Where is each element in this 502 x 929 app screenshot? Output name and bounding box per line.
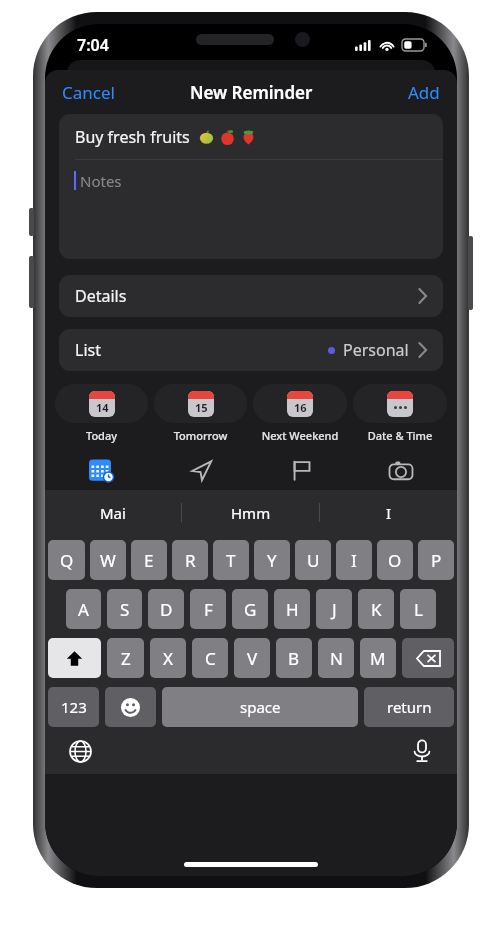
button[interactable]: V xyxy=(234,638,270,678)
staticText: W xyxy=(100,549,116,572)
button[interactable]: F xyxy=(190,589,226,629)
button[interactable]: A xyxy=(66,589,101,629)
button[interactable]: O xyxy=(377,540,413,580)
staticText: Mai xyxy=(100,503,126,523)
staticText: S xyxy=(120,598,130,621)
button[interactable]: K xyxy=(358,589,394,629)
button[interactable]: U xyxy=(295,540,331,580)
button[interactable]: Date and time xyxy=(51,450,151,490)
button[interactable]: G xyxy=(232,589,268,629)
staticText: J xyxy=(332,598,337,621)
button[interactable]: X xyxy=(150,638,186,678)
staticText: R xyxy=(185,549,196,572)
staticText: 14 xyxy=(96,400,109,415)
button[interactable]: Cancel xyxy=(45,73,132,112)
staticText: Date & Time xyxy=(353,428,447,443)
staticText: space xyxy=(240,697,281,717)
button[interactable]: R xyxy=(172,540,208,580)
button[interactable]: J xyxy=(316,589,352,629)
button[interactable]: 14 xyxy=(55,384,148,450)
staticText: B xyxy=(288,647,300,670)
button[interactable]: T xyxy=(213,540,249,580)
staticText: 16 xyxy=(294,400,307,415)
staticText: Details xyxy=(75,285,127,307)
staticText: H xyxy=(286,598,299,621)
button[interactable]: H xyxy=(274,589,310,629)
staticText: M xyxy=(370,647,386,670)
button[interactable]: space xyxy=(162,687,358,727)
staticText: F xyxy=(204,598,213,621)
button[interactable]: L xyxy=(400,589,436,629)
staticText: 15 xyxy=(195,400,208,415)
staticText: O xyxy=(388,549,402,572)
staticText: Notes xyxy=(80,171,122,191)
button[interactable]: P xyxy=(418,540,454,580)
staticText: P xyxy=(431,549,442,572)
button[interactable]: Shift xyxy=(48,638,101,678)
staticText: Y xyxy=(267,549,277,572)
button[interactable]: I xyxy=(336,540,372,580)
staticText: New Reminder xyxy=(190,81,313,104)
button[interactable]: S xyxy=(107,589,142,629)
button[interactable]: Flag xyxy=(251,450,351,490)
staticText: Buy fresh fruits xyxy=(75,126,190,148)
button[interactable]: N xyxy=(318,638,354,678)
button[interactable]: Z xyxy=(107,638,144,678)
button[interactable]: List xyxy=(59,329,443,371)
staticText: 123 xyxy=(61,697,87,717)
staticText: 7:04 xyxy=(77,34,109,56)
staticText: U xyxy=(307,549,320,572)
staticText: C xyxy=(205,647,216,670)
button[interactable]: Location xyxy=(151,450,251,490)
button[interactable]: Q xyxy=(48,540,85,580)
staticText: Next Weekend xyxy=(253,428,347,443)
button[interactable]: B xyxy=(276,638,312,678)
staticText: Z xyxy=(121,647,131,670)
staticText: E xyxy=(144,549,154,572)
button[interactable]: Emoji xyxy=(105,687,156,727)
button[interactable]: Date & Time xyxy=(353,384,447,450)
staticText: Personal xyxy=(343,339,409,361)
staticText: V xyxy=(247,647,258,670)
button[interactable]: Backspace xyxy=(402,638,454,678)
button[interactable]: 16 xyxy=(253,384,347,450)
button[interactable]: return xyxy=(364,687,454,727)
staticText: K xyxy=(371,598,382,621)
staticText: Tomorrow xyxy=(154,428,247,443)
button[interactable]: Change keyboard xyxy=(63,734,97,768)
button[interactable]: 15 xyxy=(154,384,247,450)
button[interactable]: Camera xyxy=(351,450,451,490)
button[interactable]: Mai xyxy=(45,490,181,535)
button[interactable]: D xyxy=(148,589,184,629)
staticText: Q xyxy=(60,549,74,572)
staticText: L xyxy=(414,598,423,621)
button[interactable]: E xyxy=(131,540,167,580)
staticText: return xyxy=(387,697,432,717)
button[interactable]: Buy fresh fruits xyxy=(59,114,443,259)
button[interactable]: I xyxy=(320,490,457,535)
button[interactable]: Y xyxy=(254,540,290,580)
button[interactable]: Add xyxy=(391,73,457,112)
staticText: I xyxy=(386,503,392,523)
staticText: I xyxy=(351,549,357,572)
staticText: List xyxy=(75,339,101,361)
staticText: Cancel xyxy=(62,81,115,104)
staticText: Today xyxy=(55,428,148,443)
button[interactable]: 123 xyxy=(48,687,99,727)
staticText: N xyxy=(330,647,343,670)
staticText: G xyxy=(244,598,257,621)
button[interactable]: W xyxy=(90,540,126,580)
staticText: X xyxy=(163,647,173,670)
button[interactable]: M xyxy=(360,638,396,678)
staticText: T xyxy=(226,549,236,572)
staticText: Add xyxy=(408,81,440,104)
button[interactable]: Details xyxy=(59,275,443,317)
staticText: D xyxy=(160,598,173,621)
staticText: Hmm xyxy=(231,503,271,523)
button[interactable]: C xyxy=(192,638,228,678)
button[interactable]: Hmm xyxy=(182,490,319,535)
staticText: A xyxy=(78,598,89,621)
button[interactable]: Dictate xyxy=(405,734,439,768)
